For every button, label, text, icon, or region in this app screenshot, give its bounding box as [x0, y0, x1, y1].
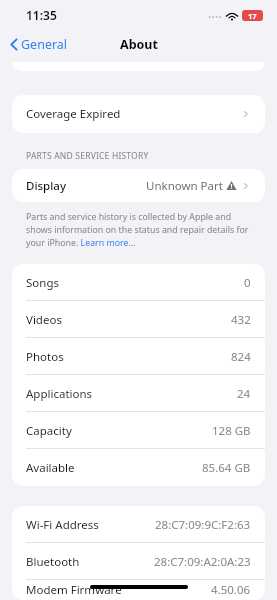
button[interactable]: Photos [12, 338, 265, 375]
staticText: Videos [26, 312, 62, 328]
staticText: 28:C7:09:A2:0A:23 [154, 554, 251, 570]
staticText: Applications [26, 386, 93, 402]
staticText: Unknown Part [146, 178, 223, 194]
button[interactable]: Capacity [12, 412, 265, 449]
button[interactable]: Modem Firmware [12, 580, 265, 600]
staticText: About [120, 36, 158, 53]
staticText: Available [26, 460, 75, 476]
button[interactable]: Songs [12, 264, 265, 301]
staticText: Modem Firmware [26, 582, 122, 598]
staticText: Capacity [26, 423, 72, 439]
button[interactable]: Wi-Fi Address [12, 506, 265, 543]
staticText: 128 GB [212, 423, 251, 439]
button[interactable]: Videos [12, 301, 265, 338]
staticText: 24 [237, 386, 251, 402]
button[interactable]: Coverage Expired [12, 95, 265, 133]
staticText: 85.64 GB [202, 460, 251, 476]
button[interactable]: Display [12, 169, 265, 202]
staticText: 4.50.06 [211, 582, 251, 598]
other: Coverage Expired details [241, 109, 251, 119]
staticText: Wi-Fi Address [26, 517, 99, 533]
staticText: Bluetooth [26, 554, 80, 570]
staticText: PARTS AND SERVICE HISTORY [26, 150, 149, 162]
staticText: 11:35 [26, 7, 57, 23]
staticText: 824 [231, 349, 251, 365]
button[interactable]: Available [12, 449, 265, 486]
staticText: General [21, 36, 68, 53]
button[interactable]: General [6, 34, 72, 55]
button[interactable]: Applications [12, 375, 265, 412]
staticText: 432 [231, 312, 251, 328]
staticText: 17 [248, 11, 257, 21]
staticText: 28:C7:09:9C:F2:63 [155, 517, 251, 533]
staticText: Coverage Expired [26, 106, 121, 122]
staticText: Display [26, 178, 66, 194]
staticText: Photos [26, 349, 64, 365]
button[interactable]: Bluetooth [12, 543, 265, 580]
staticText: 0 [244, 275, 251, 291]
staticText: Parts and service history is collected b… [26, 211, 251, 249]
staticText: Songs [26, 275, 59, 291]
